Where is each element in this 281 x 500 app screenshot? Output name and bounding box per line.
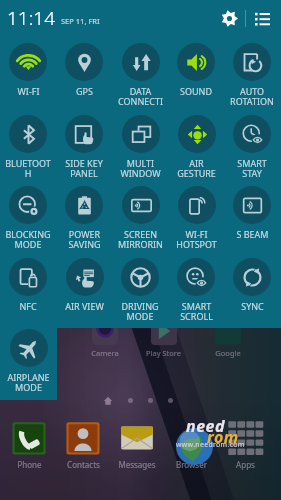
button[interactable]: GPS: [56, 43, 112, 107]
button[interactable]: SOUND: [168, 43, 224, 107]
staticText: BLOCKING MODE: [5, 228, 51, 250]
staticText: Camera: [91, 348, 119, 358]
button[interactable]: NFC: [0, 258, 56, 322]
button[interactable]: AIR VIEW: [56, 258, 112, 322]
button[interactable]: DATA CONNECTI: [112, 43, 168, 107]
staticText: Contacts: [67, 459, 100, 470]
button[interactable]: Messages: [111, 420, 163, 475]
staticText: need: [186, 415, 225, 437]
staticText: Play Store: [146, 348, 181, 358]
button[interactable]: Play Store: [137, 320, 189, 362]
button[interactable]: Google: [202, 320, 254, 362]
staticText: SCREEN MIRRORIN: [118, 228, 163, 250]
button[interactable]: SMART SCROLL: [168, 258, 224, 322]
staticText: SOUND: [180, 85, 212, 97]
staticText: Phone: [17, 459, 42, 470]
staticText: GPS: [76, 85, 93, 97]
button[interactable]: DRIVING MODE: [112, 258, 168, 322]
staticText: AIRPLANE MODE: [7, 371, 50, 393]
button[interactable]: WI-FI HOTSPOT: [168, 186, 224, 250]
staticText: AUTO ROTATION: [230, 85, 274, 107]
staticText: BLUETOOT H: [5, 157, 51, 179]
staticText: SMART SCROLL: [180, 300, 213, 322]
staticText: WI-FI: [17, 85, 40, 97]
staticText: NFC: [19, 300, 37, 312]
staticText: WI-FI HOTSPOT: [176, 228, 217, 250]
staticText: SYNC: [241, 300, 264, 312]
button[interactable]: Apps: [219, 420, 271, 475]
button[interactable]: SMART STAY: [224, 115, 280, 179]
button[interactable]: SYNC: [224, 258, 280, 322]
staticText: S BEAM: [236, 228, 269, 240]
staticText: Messages: [118, 459, 156, 470]
button[interactable]: Phone: [3, 420, 55, 475]
staticText: SMART STAY: [237, 157, 267, 179]
button[interactable]: AUTO ROTATION: [224, 43, 280, 107]
button[interactable]: Browser: [165, 420, 217, 475]
staticText: SIDE KEY PANEL: [65, 157, 103, 179]
button[interactable]: AIRPLANE MODE: [0, 329, 56, 393]
staticText: POWER SAVING: [68, 228, 101, 250]
staticText: Browser: [176, 459, 207, 470]
button[interactable]: SCREEN MIRRORIN: [112, 186, 168, 250]
button[interactable]: Settings: [213, 2, 245, 34]
button[interactable]: Edit quick settings: [246, 2, 278, 34]
staticText: AIR GESTURE: [177, 157, 216, 179]
button[interactable]: POWER SAVING: [56, 186, 112, 250]
button[interactable]: BLUETOOT H: [0, 115, 56, 179]
staticText: SEP 11, FRI: [61, 16, 100, 26]
staticText: MULTI WINDOW: [120, 157, 161, 179]
staticText: Apps: [236, 459, 255, 470]
button[interactable]: Contacts: [57, 420, 109, 475]
staticText: AIR VIEW: [65, 300, 104, 312]
button[interactable]: AIR GESTURE: [168, 115, 224, 179]
staticText: 11:14: [7, 5, 56, 31]
staticText: rom: [207, 426, 239, 448]
staticText: Google: [215, 348, 241, 358]
staticText: www.needrom.com: [176, 440, 245, 450]
button[interactable]: Camera: [79, 320, 131, 362]
staticText: DRIVING MODE: [121, 300, 159, 322]
button[interactable]: S BEAM: [224, 186, 280, 250]
staticText: DATA CONNECTI: [118, 85, 163, 107]
button[interactable]: MULTI WINDOW: [112, 115, 168, 179]
button[interactable]: SIDE KEY PANEL: [56, 115, 112, 179]
button[interactable]: WI-FI: [0, 43, 56, 107]
button[interactable]: BLOCKING MODE: [0, 186, 56, 250]
